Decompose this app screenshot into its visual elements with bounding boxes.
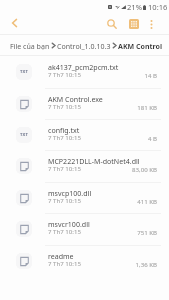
staticText: 83,00 KB bbox=[132, 165, 157, 173]
button[interactable]: Search bbox=[101, 14, 123, 34]
staticText: 7 Th7 10:15 bbox=[48, 133, 81, 141]
staticText: ak4137_pcm2pcm.txt bbox=[48, 62, 119, 72]
staticText: msvcr100.dll bbox=[48, 219, 90, 229]
button[interactable]: 4 B bbox=[0, 119, 169, 150]
staticText: 7 Th7 10:15 bbox=[48, 102, 81, 110]
staticText: 411 KB bbox=[137, 197, 157, 205]
button[interactable]: 14 B bbox=[0, 56, 169, 87]
staticText: 7 Th7 10:15 bbox=[48, 259, 81, 267]
staticText: File của bạn bbox=[10, 41, 50, 51]
button[interactable]: 181 KB bbox=[0, 88, 169, 119]
staticText: 751 KB bbox=[137, 228, 157, 236]
staticText: 7 Th7 10:15 bbox=[48, 164, 81, 172]
staticText: 21% bbox=[127, 2, 142, 12]
staticText: 7 Th7 10:15 bbox=[48, 196, 81, 204]
staticText: TXT bbox=[20, 69, 29, 75]
button[interactable]: 411 KB bbox=[0, 182, 169, 213]
staticText: config.txt bbox=[48, 125, 80, 135]
button[interactable]: Grid view bbox=[123, 14, 145, 34]
staticText: AKM Control bbox=[118, 41, 163, 51]
button[interactable]: Back bbox=[0, 14, 28, 34]
button[interactable]: 1,36 KB bbox=[0, 245, 169, 276]
staticText: 10:16 bbox=[148, 2, 168, 12]
staticText: 14 B bbox=[144, 71, 157, 79]
staticText: Control_1.0.10.3 bbox=[57, 41, 111, 51]
staticText: 7 Th7 10:15 bbox=[48, 227, 81, 235]
staticText: 7 Th7 10:15 bbox=[48, 70, 81, 78]
staticText: TXT bbox=[20, 132, 29, 138]
staticText: 4 B bbox=[147, 134, 157, 142]
staticText: readme bbox=[48, 251, 74, 261]
staticText: AKM Control.exe bbox=[48, 94, 103, 104]
button[interactable]: More options bbox=[145, 14, 158, 34]
button[interactable]: 751 KB bbox=[0, 213, 169, 244]
staticText: MCP2221DLL-M-dotNet4.dll bbox=[48, 156, 140, 166]
button[interactable]: 83,00 KB bbox=[0, 150, 169, 181]
staticText: msvcp100.dll bbox=[48, 188, 92, 198]
staticText: 181 KB bbox=[137, 103, 157, 111]
staticText: 1,36 KB bbox=[135, 260, 157, 268]
